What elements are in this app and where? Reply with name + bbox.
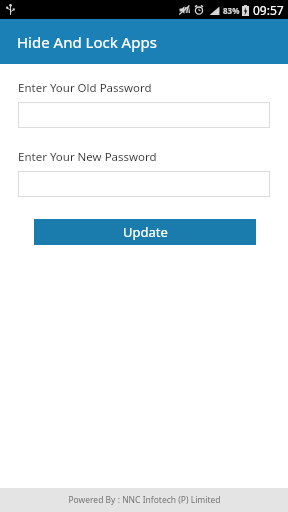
staticText: Update (123, 223, 168, 241)
staticText: Enter Your New Password (18, 149, 157, 165)
button[interactable]: Update (34, 219, 256, 245)
staticText: 09:57 (253, 2, 284, 18)
button[interactable] (18, 171, 270, 197)
staticText: Powered By : NNC Infotech (P) Limited (68, 494, 221, 506)
other: USB connected (6, 4, 15, 15)
staticText: Hide And Lock Apps (17, 32, 157, 52)
staticText: Enter Your Old Password (18, 80, 152, 96)
staticText: 83% (223, 5, 240, 16)
button[interactable] (18, 102, 270, 128)
